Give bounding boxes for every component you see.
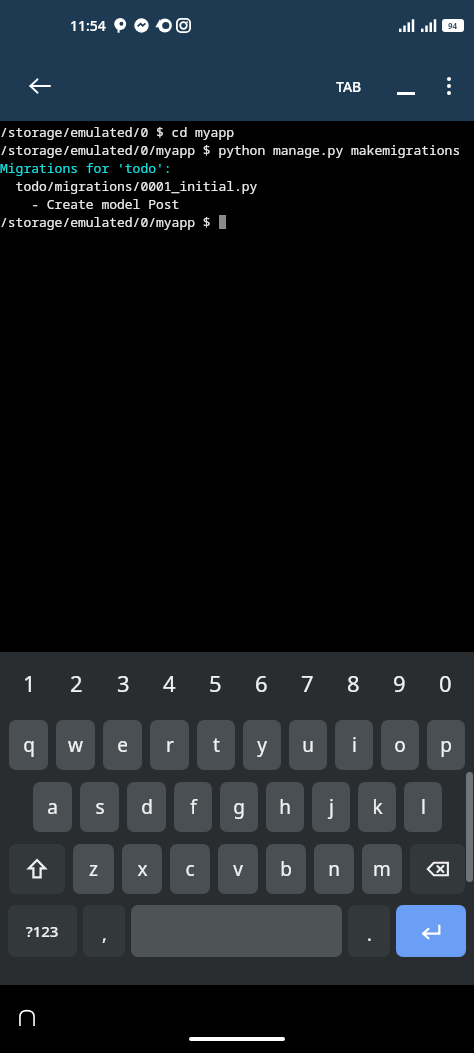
button[interactable]: r <box>150 720 189 770</box>
staticText: n <box>328 856 340 882</box>
button[interactable]: Backspace <box>410 844 465 894</box>
button[interactable]: 2 <box>53 652 100 714</box>
button[interactable]: Back gesture <box>6 998 48 1040</box>
staticText: a <box>47 794 58 820</box>
button[interactable]: o <box>381 720 419 770</box>
button[interactable]: i <box>335 720 373 770</box>
button[interactable]: . <box>348 905 390 957</box>
staticText: /storage/emulated/0/myapp $ <box>0 213 219 231</box>
staticText: g <box>233 794 245 820</box>
button[interactable]: 7 <box>284 652 330 714</box>
staticText: e <box>117 732 128 758</box>
button[interactable]: a <box>33 782 72 832</box>
button[interactable]: u <box>289 720 327 770</box>
button[interactable]: b <box>266 844 306 894</box>
staticText: h <box>279 794 291 820</box>
button[interactable]: z <box>73 844 114 894</box>
staticText: 11:54 <box>70 16 106 35</box>
staticText: 4 <box>163 668 176 698</box>
staticText: l <box>421 794 426 820</box>
button[interactable]: x <box>122 844 162 894</box>
staticText: 7 <box>301 668 314 698</box>
staticText: w <box>68 732 83 758</box>
button[interactable]: h <box>266 782 304 832</box>
staticText: p <box>440 732 452 758</box>
staticText: t <box>213 732 220 758</box>
button[interactable]: 4 <box>146 652 192 714</box>
button[interactable]: t <box>197 720 235 770</box>
staticText: y <box>257 732 267 758</box>
button[interactable]: Enter <box>396 905 466 957</box>
button[interactable]: 1 <box>6 652 53 714</box>
staticText: - Create model Post <box>0 195 180 213</box>
staticText: /storage/emulated/0/myapp $ python manag… <box>0 141 461 159</box>
staticText: 94 <box>448 20 458 31</box>
button[interactable]: k <box>358 782 396 832</box>
button[interactable]: n <box>314 844 354 894</box>
button[interactable]: 9 <box>376 652 422 714</box>
button[interactable]: TAB <box>326 64 372 108</box>
button[interactable]: d <box>127 782 166 832</box>
staticText: todo/migrations/0001_initial.py <box>0 177 258 195</box>
staticText: f <box>190 794 197 820</box>
button[interactable]: 8 <box>330 652 376 714</box>
button[interactable]: v <box>218 844 258 894</box>
staticText: 0 <box>439 668 452 698</box>
button[interactable]: l <box>404 782 442 832</box>
button[interactable]: More options <box>428 65 470 107</box>
button[interactable]: ?123 <box>8 905 77 957</box>
staticText: v <box>233 856 243 882</box>
staticText: k <box>372 794 383 820</box>
button[interactable]: q <box>9 720 48 770</box>
button[interactable]: w <box>56 720 95 770</box>
button[interactable]: , <box>83 905 125 957</box>
staticText: 9 <box>393 668 406 698</box>
button[interactable]: g <box>220 782 258 832</box>
staticText: s <box>95 794 105 820</box>
button[interactable]: 0 <box>422 652 468 714</box>
button[interactable]: Minimize <box>386 66 426 106</box>
button[interactable]: Home <box>189 1037 285 1041</box>
staticText: x <box>137 856 148 882</box>
button[interactable]: s <box>80 782 119 832</box>
staticText: i <box>352 732 357 758</box>
staticText: 2 <box>70 668 83 698</box>
staticText: u <box>302 732 314 758</box>
staticText: r <box>166 732 174 758</box>
staticText: b <box>280 856 292 882</box>
staticText: 3 <box>117 668 130 698</box>
staticText: 1 <box>23 668 36 698</box>
staticText: m <box>373 856 391 882</box>
button[interactable]: 3 <box>100 652 146 714</box>
button[interactable]: e <box>103 720 142 770</box>
staticText: 6 <box>255 668 268 698</box>
staticText: o <box>394 732 406 758</box>
staticText: TAB <box>336 77 362 96</box>
button[interactable]: Back <box>18 64 62 108</box>
button[interactable]: 5 <box>192 652 238 714</box>
staticText: ?123 <box>26 921 59 941</box>
button[interactable]: m <box>362 844 402 894</box>
staticText: , <box>102 922 107 947</box>
staticText: z <box>89 856 98 882</box>
staticText: c <box>185 856 195 882</box>
button[interactable]: j <box>312 782 350 832</box>
button[interactable]: p <box>427 720 465 770</box>
staticText: Migrations for 'todo': <box>0 159 172 177</box>
button[interactable]: Shift <box>9 844 65 894</box>
button[interactable]: c <box>170 844 210 894</box>
staticText: d <box>141 794 153 820</box>
staticText: q <box>23 732 35 758</box>
button[interactable]: y <box>243 720 281 770</box>
button[interactable]: f <box>174 782 212 832</box>
staticText: 8 <box>347 668 360 698</box>
staticText: /storage/emulated/0 $ cd myapp <box>0 123 235 141</box>
staticText: . <box>367 922 372 947</box>
staticText: j <box>329 794 334 820</box>
button[interactable]: 6 <box>238 652 284 714</box>
staticText: 5 <box>209 668 222 698</box>
